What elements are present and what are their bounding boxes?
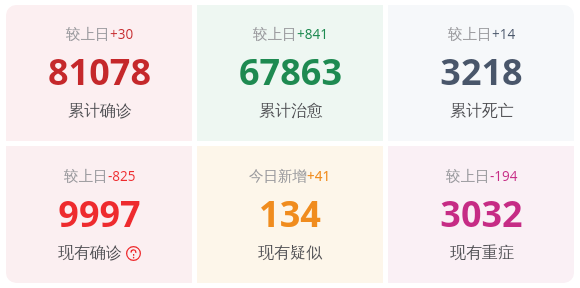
staticText: 累计确诊 (68, 101, 132, 121)
staticText: 3032 (440, 189, 523, 238)
button[interactable]: 今日新增 (197, 146, 383, 283)
button[interactable]: 较上日 (197, 5, 383, 141)
staticText: 累计治愈 (259, 101, 323, 121)
button[interactable]: 较上日 (6, 146, 192, 283)
staticText: +14 (492, 25, 516, 43)
staticText: -825 (108, 167, 136, 185)
staticText: 81078 (48, 47, 151, 96)
staticText: 今日新增 (249, 167, 307, 185)
staticText: 较上日 (448, 25, 492, 43)
staticText: 较上日 (64, 167, 108, 185)
staticText: 现有重症 (450, 243, 514, 263)
staticText: 67863 (239, 47, 342, 96)
staticText: 现有确诊 (58, 243, 122, 263)
staticText: 较上日 (66, 25, 110, 43)
button[interactable]: 较上日 (388, 5, 574, 141)
staticText: 现有疑似 (258, 243, 322, 263)
other: 帮助说明 (126, 246, 141, 261)
staticText: 3218 (440, 47, 523, 96)
staticText: 较上日 (253, 25, 297, 43)
staticText: -194 (490, 167, 518, 185)
button[interactable]: 较上日 (6, 5, 192, 141)
staticText: 较上日 (446, 167, 490, 185)
staticText: +41 (307, 167, 331, 185)
staticText: 累计死亡 (450, 101, 514, 121)
staticText: +841 (297, 25, 328, 43)
staticText: 9997 (58, 189, 141, 238)
staticText: 134 (259, 189, 321, 238)
staticText: +30 (110, 25, 134, 43)
button[interactable]: 较上日 (388, 146, 574, 283)
